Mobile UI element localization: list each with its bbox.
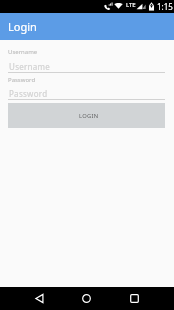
button[interactable]: LOGIN — [8, 103, 165, 128]
staticText: Username — [9, 61, 51, 72]
button[interactable]: Recent apps — [122, 287, 147, 310]
button[interactable]: Home — [74, 287, 99, 310]
button[interactable]: Password — [8, 86, 165, 100]
staticText: Password — [8, 76, 36, 84]
button[interactable]: Login — [0, 13, 174, 40]
button[interactable]: Back — [27, 287, 52, 310]
button[interactable]: Username — [8, 59, 165, 73]
staticText: Password — [9, 88, 48, 99]
staticText: 1:15 — [157, 1, 173, 12]
staticText: Login — [8, 19, 37, 34]
staticText: LOGIN — [79, 112, 99, 120]
staticText: Username — [8, 48, 38, 56]
staticText: LTE — [126, 1, 136, 9]
